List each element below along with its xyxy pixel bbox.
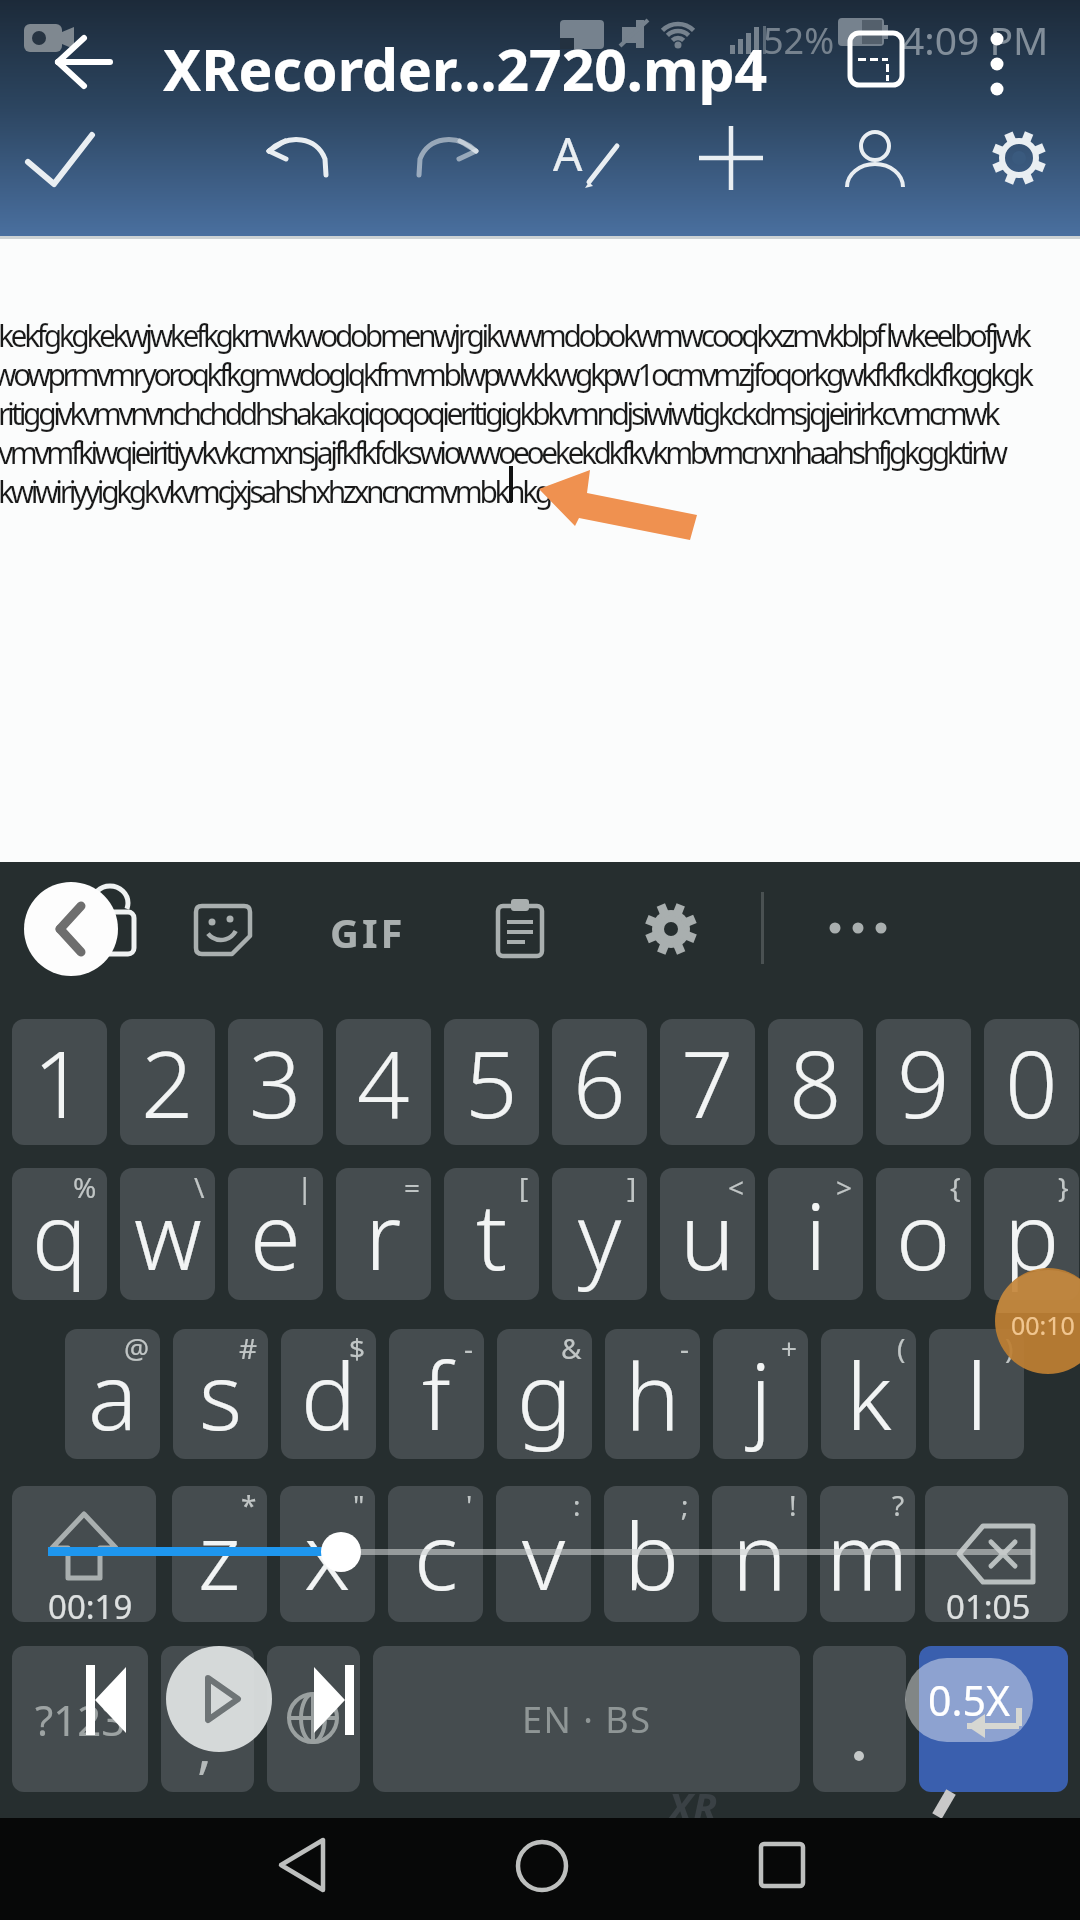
button[interactable]: t: [444, 1168, 539, 1300]
staticText: v: [522, 1492, 566, 1617]
button[interactable]: o: [876, 1168, 971, 1300]
staticText: s: [199, 1332, 243, 1457]
button[interactable]: 9: [876, 1019, 971, 1145]
button[interactable]: [166, 1646, 272, 1752]
button[interactable]: GIF: [330, 905, 420, 955]
button[interactable]: [745, 1830, 825, 1900]
button[interactable]: [24, 882, 118, 976]
button[interactable]: f: [389, 1329, 484, 1459]
staticText: 6: [573, 1020, 626, 1145]
staticText: A: [553, 122, 583, 185]
button[interactable]: [267, 1646, 360, 1792]
staticText: r: [365, 1172, 402, 1297]
button[interactable]: 1: [12, 1019, 107, 1145]
button[interactable]: [985, 118, 1055, 198]
button[interactable]: w: [120, 1168, 215, 1300]
button[interactable]: p: [984, 1168, 1079, 1300]
button[interactable]: h: [605, 1329, 700, 1459]
button[interactable]: m: [820, 1486, 915, 1622]
button[interactable]: 3: [228, 1019, 323, 1145]
button[interactable]: [300, 1655, 370, 1745]
button[interactable]: n: [712, 1486, 807, 1622]
staticText: GIF: [330, 905, 406, 955]
button[interactable]: g: [497, 1329, 592, 1459]
staticText: o: [896, 1172, 951, 1297]
button[interactable]: q: [12, 1168, 107, 1300]
staticText: 01:05: [946, 1584, 1031, 1629]
button[interactable]: [192, 902, 252, 958]
button[interactable]: [919, 1646, 1068, 1792]
button[interactable]: [255, 125, 345, 195]
button[interactable]: l: [929, 1329, 1024, 1459]
button[interactable]: [838, 120, 918, 200]
button[interactable]: v: [496, 1486, 591, 1622]
button[interactable]: j: [713, 1329, 808, 1459]
staticText: y: [578, 1172, 622, 1297]
button[interactable]: A: [545, 120, 635, 195]
button[interactable]: EN · BS: [373, 1646, 800, 1792]
staticText: XR: [668, 1779, 718, 1833]
button[interactable]: 5: [444, 1019, 539, 1145]
button[interactable]: [813, 1646, 906, 1792]
button[interactable]: [492, 898, 552, 960]
staticText: m: [826, 1492, 909, 1617]
button[interactable]: x: [280, 1486, 375, 1622]
staticText: ): [1005, 1329, 1014, 1367]
staticText: -: [464, 1329, 474, 1367]
staticText: 4: [357, 1020, 410, 1145]
button[interactable]: c: [388, 1486, 483, 1622]
staticText: u: [680, 1172, 735, 1297]
staticText: 2: [141, 1020, 194, 1145]
button[interactable]: 2: [120, 1019, 215, 1145]
button[interactable]: [925, 1486, 1068, 1622]
staticText: =: [404, 1168, 421, 1206]
staticText: vmvmfkiwqieiritiyvkvkcmxnsjajfkfkfdkswio…: [0, 432, 1005, 473]
button[interactable]: 0.5X: [905, 1658, 1033, 1742]
button[interactable]: [40, 30, 120, 94]
button[interactable]: [70, 1655, 140, 1745]
button[interactable]: b: [604, 1486, 699, 1622]
button[interactable]: k: [821, 1329, 916, 1459]
button[interactable]: [505, 1830, 585, 1900]
staticText: XRecorder...2720.mp4: [163, 30, 768, 108]
button[interactable]: 8: [768, 1019, 863, 1145]
staticText: 5: [465, 1020, 518, 1145]
button[interactable]: [12, 1486, 156, 1622]
button[interactable]: 4: [336, 1019, 431, 1145]
button[interactable]: [690, 120, 775, 200]
button[interactable]: [975, 25, 1020, 105]
staticText: 52%: [763, 16, 835, 65]
button[interactable]: 0: [984, 1019, 1079, 1145]
staticText: [: [519, 1168, 529, 1206]
button[interactable]: ,: [161, 1646, 254, 1792]
button[interactable]: [820, 908, 900, 948]
button[interactable]: [321, 1532, 361, 1572]
button[interactable]: ?123: [12, 1646, 148, 1792]
button[interactable]: s: [173, 1329, 268, 1459]
staticText: i: [805, 1172, 827, 1297]
button[interactable]: 6: [552, 1019, 647, 1145]
staticText: wowprmvmryoroqkfkgmwdoglqkfmvmblwpwvkkwg…: [0, 354, 1031, 395]
button[interactable]: u: [660, 1168, 755, 1300]
button[interactable]: [845, 28, 909, 90]
staticText: -: [680, 1329, 690, 1367]
staticText: !: [789, 1486, 797, 1524]
button[interactable]: d: [281, 1329, 376, 1459]
staticText: &: [561, 1329, 582, 1367]
button[interactable]: a: [65, 1329, 160, 1459]
staticText: #: [239, 1329, 258, 1367]
button[interactable]: [15, 125, 105, 195]
staticText: c: [414, 1492, 458, 1617]
staticText: h: [625, 1332, 680, 1457]
staticText: \: [194, 1168, 205, 1206]
button[interactable]: r: [336, 1168, 431, 1300]
button[interactable]: y: [552, 1168, 647, 1300]
button[interactable]: i: [768, 1168, 863, 1300]
button[interactable]: z: [172, 1486, 267, 1622]
button[interactable]: [265, 1830, 345, 1900]
button[interactable]: e: [228, 1168, 323, 1300]
staticText: 8: [789, 1020, 842, 1145]
button[interactable]: 7: [660, 1019, 755, 1145]
button[interactable]: [400, 125, 490, 195]
button[interactable]: [640, 898, 702, 960]
